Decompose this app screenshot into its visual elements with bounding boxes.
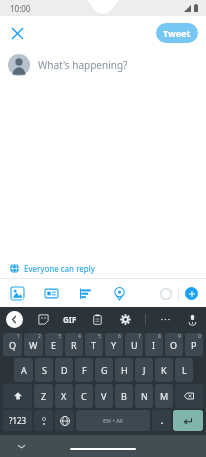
button[interactable]: GIF: [63, 314, 77, 325]
button[interactable]: Enter: [173, 410, 203, 431]
button[interactable]: M: [155, 384, 173, 408]
staticText: V: [101, 390, 107, 402]
staticText: S: [42, 364, 47, 376]
button[interactable]: Tweet: [156, 23, 198, 43]
button[interactable]: L: [175, 358, 193, 382]
staticText: A: [21, 364, 27, 376]
staticText: 3: [58, 333, 61, 340]
staticText: 8: [158, 333, 161, 340]
staticText: P: [191, 339, 197, 351]
staticText: Z: [41, 390, 47, 402]
staticText: G: [101, 364, 108, 376]
staticText: T: [91, 339, 97, 351]
staticText: R: [71, 339, 77, 351]
staticText: X: [61, 390, 67, 402]
staticText: U: [131, 339, 138, 351]
button[interactable]: Voice input: [184, 311, 200, 327]
staticText: L: [182, 364, 187, 376]
button[interactable]: Close: [4, 20, 30, 46]
staticText: EN • AF: [103, 417, 124, 425]
button[interactable]: Stickers: [35, 311, 51, 327]
staticText: F: [82, 364, 87, 376]
button[interactable]: More options: [158, 312, 172, 326]
button[interactable]: P: [185, 333, 203, 356]
staticText: 10:00: [10, 3, 31, 14]
button[interactable]: EN • AF: [76, 410, 150, 431]
button[interactable]: Add tweet: [185, 287, 198, 300]
staticText: Y: [111, 339, 117, 351]
staticText: Everyone can reply: [24, 263, 95, 274]
staticText: What's happening?: [38, 58, 128, 72]
button[interactable]: E: [45, 333, 63, 356]
staticText: K: [161, 364, 167, 376]
button[interactable]: V: [95, 384, 113, 408]
button[interactable]: F: [75, 358, 93, 382]
staticText: J: [143, 364, 146, 376]
button[interactable]: Period: [152, 410, 171, 431]
button[interactable]: J: [135, 358, 153, 382]
staticText: 9: [178, 333, 181, 340]
button[interactable]: S: [35, 358, 53, 382]
button[interactable]: N: [135, 384, 153, 408]
button[interactable]: I: [145, 333, 163, 356]
staticText: ?123: [9, 415, 27, 426]
staticText: H: [121, 364, 128, 376]
button[interactable]: X: [55, 384, 73, 408]
staticText: Q: [9, 339, 17, 351]
button[interactable]: Add photo: [8, 284, 26, 302]
button[interactable]: Add poll: [76, 284, 94, 302]
staticText: W: [29, 339, 38, 351]
button[interactable]: Settings: [117, 311, 133, 327]
staticText: 5: [98, 333, 101, 340]
button[interactable]: R: [65, 333, 83, 356]
button[interactable]: B: [115, 384, 133, 408]
button[interactable]: Y: [105, 333, 123, 356]
button[interactable]: Emoji: [34, 410, 53, 431]
staticText: 2: [38, 333, 41, 340]
button[interactable]: Q: [3, 333, 22, 356]
button[interactable]: Hide keyboard: [14, 439, 28, 453]
button[interactable]: Z: [34, 384, 53, 408]
button[interactable]: A: [14, 358, 33, 382]
button[interactable]: Back: [6, 311, 23, 328]
button[interactable]: W: [24, 333, 43, 356]
button[interactable]: Everyone can reply: [0, 258, 206, 278]
staticText: 0: [198, 333, 201, 340]
staticText: C: [81, 390, 87, 402]
button[interactable]: T: [85, 333, 103, 356]
button[interactable]: C: [75, 384, 93, 408]
button[interactable]: G: [95, 358, 113, 382]
staticText: N: [141, 390, 148, 402]
button[interactable]: Add location: [110, 284, 128, 302]
staticText: O: [170, 339, 178, 351]
button[interactable]: H: [115, 358, 133, 382]
staticText: E: [51, 339, 57, 351]
staticText: D: [61, 364, 68, 376]
button[interactable]: ?123: [3, 410, 32, 431]
button[interactable]: Shift: [3, 384, 32, 408]
button[interactable]: Clipboard: [89, 311, 105, 327]
button[interactable]: Add GIF: [42, 284, 60, 302]
staticText: B: [121, 390, 127, 402]
staticText: 1: [17, 333, 20, 340]
button[interactable]: D: [55, 358, 73, 382]
staticText: 4: [78, 333, 81, 340]
staticText: 6: [118, 333, 121, 340]
button[interactable]: O: [165, 333, 183, 356]
staticText: I: [152, 339, 156, 351]
staticText: GIF: [63, 314, 77, 325]
button[interactable]: U: [125, 333, 143, 356]
button[interactable]: Change language: [55, 410, 74, 431]
button[interactable]: K: [155, 358, 173, 382]
staticText: M: [160, 390, 169, 402]
button[interactable]: Backspace: [175, 384, 203, 408]
staticText: 7: [138, 333, 141, 340]
staticText: Tweet: [163, 27, 191, 39]
